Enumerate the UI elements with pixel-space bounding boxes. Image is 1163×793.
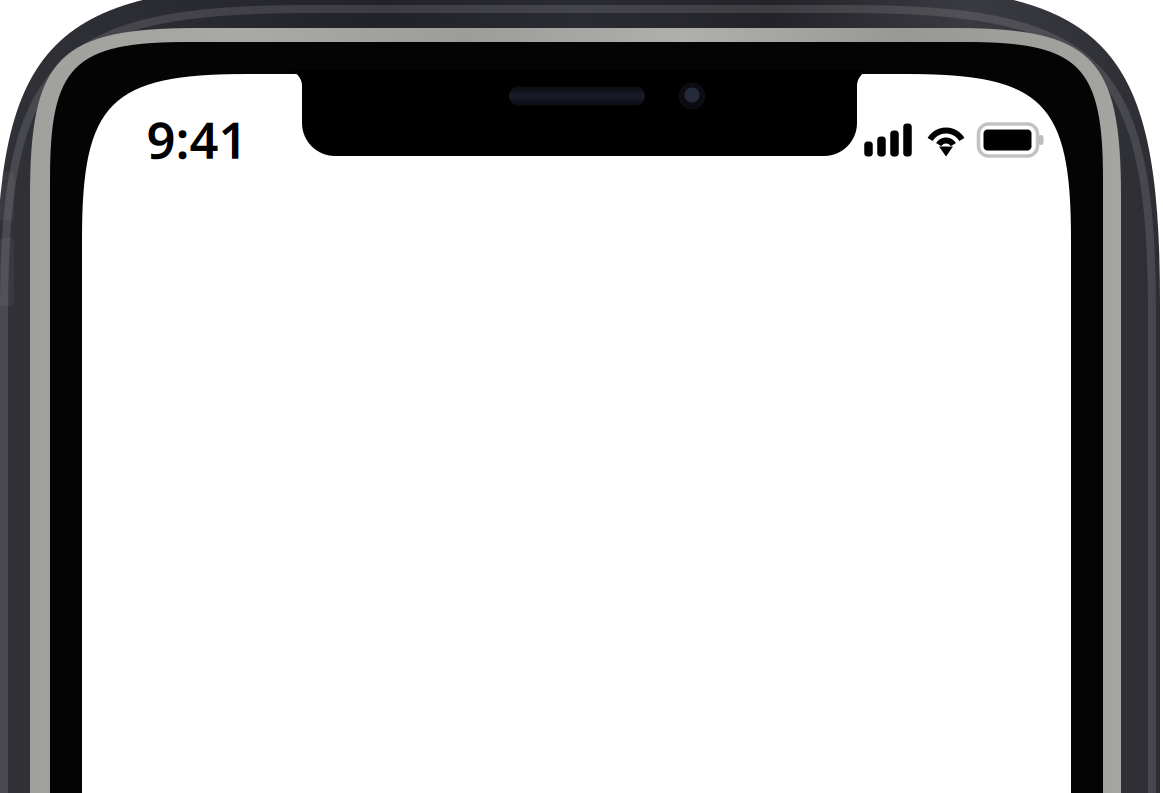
staticText: 9:41	[146, 105, 247, 173]
